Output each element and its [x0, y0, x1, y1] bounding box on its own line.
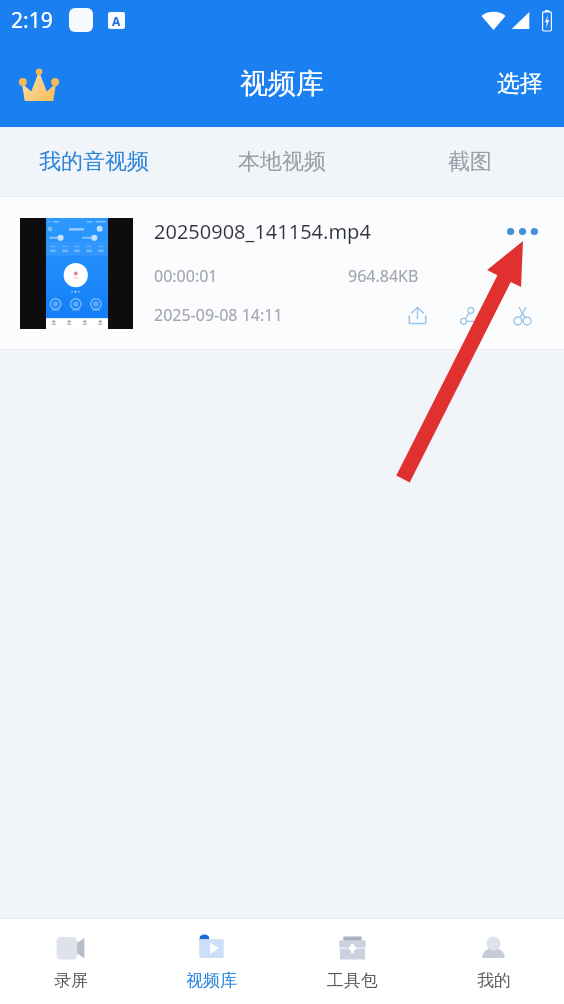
button[interactable]: 我的音视频: [0, 127, 188, 196]
staticText: 视频库: [240, 66, 324, 101]
button[interactable]: More options: [501, 219, 544, 244]
staticText: 录屏: [54, 970, 88, 991]
staticText: 工具包: [327, 970, 378, 991]
staticText: 截图: [448, 148, 492, 176]
button[interactable]: 录屏: [0, 919, 141, 1004]
button[interactable]: 工具包: [282, 919, 423, 1004]
button[interactable]: 截图: [376, 127, 564, 196]
staticText: 00:00:01: [154, 265, 218, 287]
button[interactable]: 我的: [423, 919, 564, 1004]
button[interactable]: 本地视频: [188, 127, 376, 196]
staticText: 视频库: [186, 970, 237, 991]
staticText: 2025-09-08 14:11: [154, 304, 283, 326]
button[interactable]: 20250908_141154.mp4: [0, 197, 564, 350]
button[interactable]: 选择: [473, 57, 564, 110]
staticText: 本地视频: [238, 148, 326, 176]
button[interactable]: Cut: [508, 304, 544, 330]
staticText: 2:19: [11, 6, 53, 35]
staticText: 我的音视频: [39, 148, 149, 176]
staticText: 964.84KB: [348, 265, 419, 287]
staticText: 选择: [497, 69, 543, 98]
button[interactable]: VIP: [12, 57, 66, 111]
staticText: 我的: [477, 970, 511, 991]
button[interactable]: Transfer: [455, 304, 484, 330]
button[interactable]: Share: [394, 304, 432, 330]
staticText: 20250908_141154.mp4: [154, 218, 501, 245]
button[interactable]: 视频库: [141, 919, 282, 1004]
staticText: A: [112, 13, 121, 29]
